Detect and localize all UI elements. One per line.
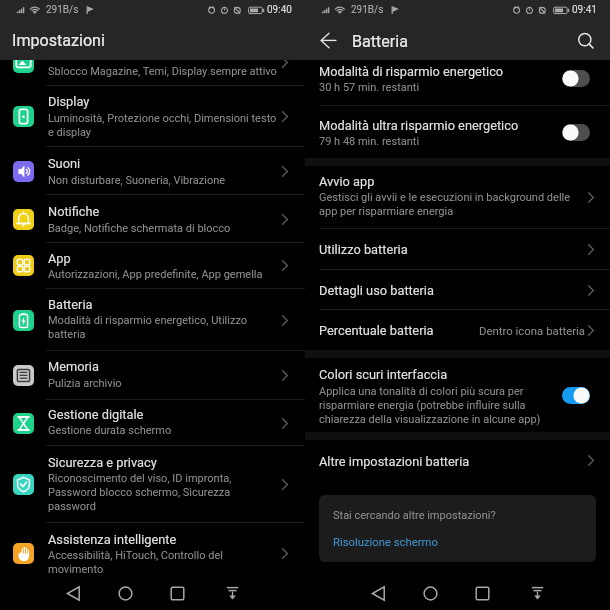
staticText: Luminosità, Protezione occhi, Dimensioni… [48,112,277,125]
button[interactable]: Altre impostazioni batteria [305,440,610,481]
staticText: Applica una tonalità di colori più scura… [319,385,524,398]
staticText: Suoni [48,156,81,171]
button[interactable]: Indietro [66,586,81,601]
button[interactable]: Utilizzo batteria [305,229,610,270]
staticText: Gestione digitale [48,407,144,422]
button[interactable]: Notifiche [0,195,305,243]
button[interactable]: Memoria [0,351,305,400]
staticText: Password blocco schermo, Sicurezza [48,486,231,499]
staticText: Badge, Notifiche schermata di blocco [48,222,231,235]
staticText: App [48,251,71,266]
staticText: Memoria [48,359,99,374]
staticText: Percentuale batteria [319,323,434,338]
button[interactable]: Sicurezza e privacy [0,446,305,523]
staticText: Batteria [48,297,93,312]
button[interactable]: Suoni [0,147,305,195]
button[interactable]: Modalità ultra risparmio energetico [305,106,610,159]
staticText: 09:41 [572,4,597,16]
button[interactable]: Avvio app [305,166,610,229]
staticText: Batteria [352,32,408,51]
staticText: Avvio app [319,174,375,189]
button[interactable]: Modalità di risparmio energetico [305,60,610,106]
staticText: Utilizzo batteria [319,242,408,257]
button[interactable]: Display [0,85,305,147]
staticText: Dettagli uso batteria [319,283,434,298]
button[interactable]: Gestione digitale [0,400,305,446]
button[interactable]: Assistenza intelligente [0,523,305,581]
staticText: Sblocco Magazine, Temi, Display sempre a… [48,65,277,78]
button[interactable]: Home [423,586,438,601]
staticText: Sicurezza e privacy [48,455,157,470]
button[interactable]: Recenti [475,586,490,601]
staticText: 291B/s [351,4,384,16]
other: Disattiva [562,387,590,404]
staticText: app per risparmiare energia [319,205,454,218]
button[interactable]: Schermata Home e sfondi [0,60,305,86]
staticText: chiarezza della visualizzazione in alcun… [319,413,541,426]
button[interactable]: Cerca [577,28,601,52]
button[interactable]: Dettagli uso batteria [305,270,610,310]
staticText: Colori scuri interfaccia [319,367,448,382]
staticText: Accessibilità, HiTouch, Controllo del [48,549,223,562]
staticText: Assistenza intelligente [48,532,177,547]
button[interactable]: App [0,242,305,289]
staticText: risparmiare energia (potrebbe influire s… [319,399,526,412]
staticText: Altre impostazioni batteria [319,454,470,469]
staticText: e display [48,126,92,139]
staticText: movimento [48,563,104,576]
staticText: Display [48,94,90,109]
staticText: 09:40 [267,4,292,16]
other: Attiva [562,70,590,87]
staticText: 30 h 57 min. restanti [319,81,420,94]
staticText: Modalità ultra risparmio energetico [319,118,519,133]
button[interactable]: Percentuale batteria [305,310,610,350]
staticText: Impostazioni [12,31,105,50]
button[interactable]: Batteria [0,289,305,351]
staticText: 79 h 48 min. restanti [319,135,420,148]
staticText: Dentro icona batteria [479,324,586,337]
staticText: password [48,500,96,513]
button[interactable]: Home [118,586,133,601]
other: Attiva [562,124,590,141]
staticText: Modalità di risparmio energetico, Utiliz… [48,314,248,327]
button[interactable]: Nascondi barra di navigazione [225,586,240,601]
staticText: Riconoscimento del viso, ID impronta, [48,472,232,485]
button[interactable]: Risoluzione schermo [333,536,438,549]
staticText: Notifiche [48,204,100,219]
staticText: 291B/s [46,4,79,16]
button[interactable]: Indietro [318,30,340,52]
staticText: Gestisci gli avvii e le esecuzioni in ba… [319,191,571,204]
staticText: batteria [48,328,86,341]
button[interactable]: Indietro [371,586,386,601]
staticText: Non disturbare, Suoneria, Vibrazione [48,174,226,187]
button[interactable]: Recenti [170,586,185,601]
button[interactable]: Colori scuri interfaccia [305,358,610,432]
staticText: Gestione durata schermo [48,424,172,437]
staticText: Autorizzazioni, App predefinite, App gem… [48,268,263,281]
button[interactable]: Nascondi barra di navigazione [530,586,545,601]
staticText: Pulizia archivio [48,377,122,390]
staticText: Modalità di risparmio energetico [319,64,504,79]
staticText: Stai cercando altre impostazioni? [333,509,496,522]
